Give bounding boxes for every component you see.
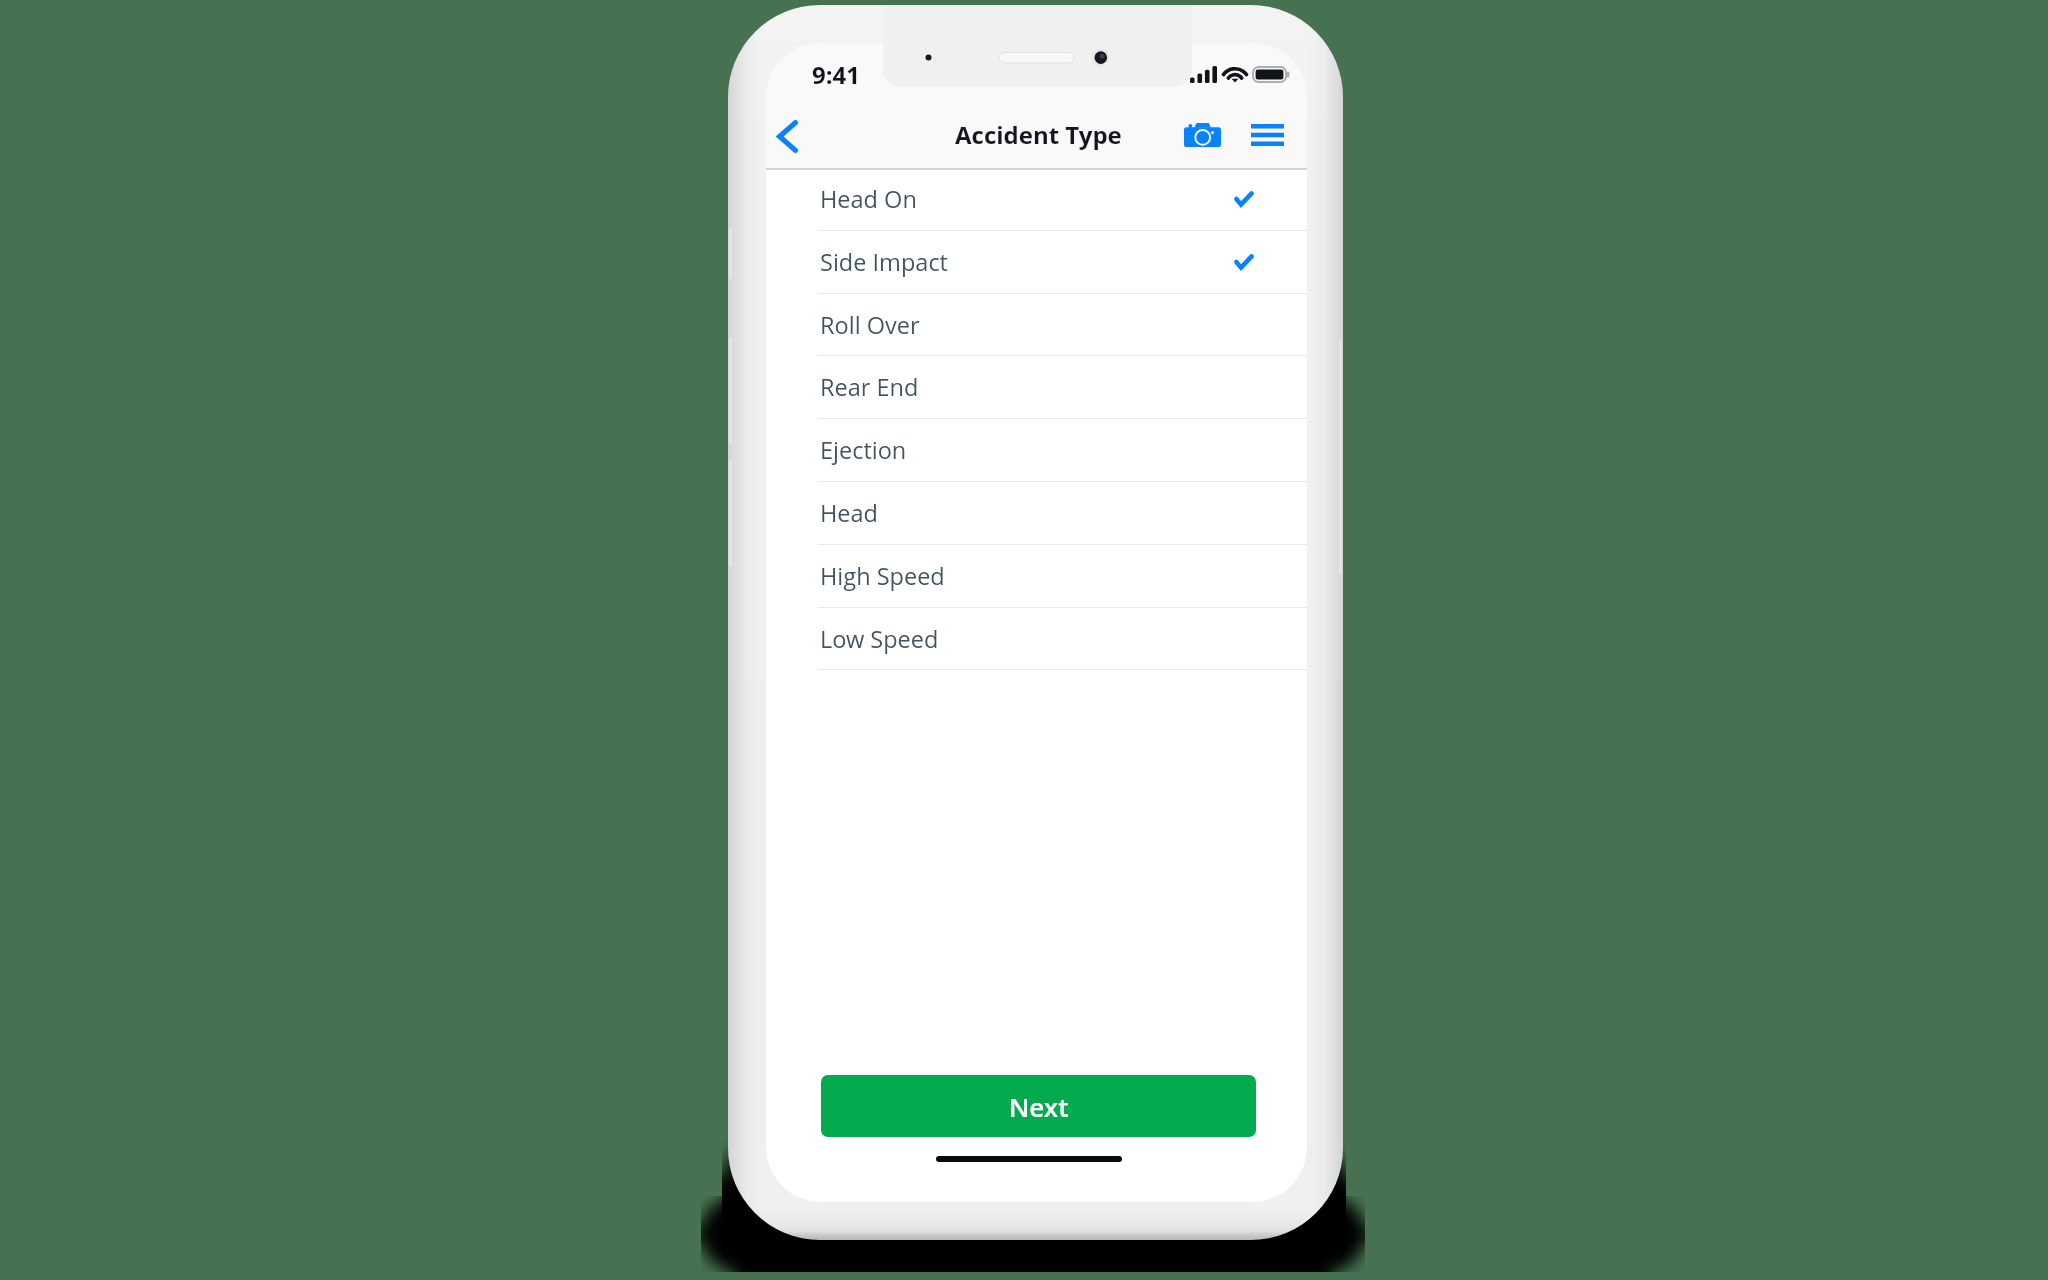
staticText: Accident Type: [955, 118, 1122, 151]
button[interactable]: Head: [766, 481, 1307, 544]
button[interactable]: Menu: [1241, 109, 1293, 161]
staticText: High Speed: [820, 560, 945, 592]
button[interactable]: Low Speed: [766, 607, 1307, 670]
button[interactable]: Side Impact: [766, 230, 1307, 293]
staticText: 9:41: [812, 58, 860, 91]
staticText: Roll Over: [820, 309, 920, 341]
button[interactable]: Head On: [766, 167, 1307, 230]
staticText: Head: [820, 497, 878, 529]
button[interactable]: Camera: [1176, 109, 1228, 161]
button[interactable]: Ejection: [766, 418, 1307, 481]
button[interactable]: Rear End: [766, 355, 1307, 418]
staticText: Head On: [820, 183, 917, 215]
button[interactable]: Next: [821, 1075, 1256, 1137]
staticText: Ejection: [820, 434, 907, 466]
button[interactable]: Back: [766, 107, 816, 165]
staticText: Low Speed: [820, 623, 939, 655]
button[interactable]: High Speed: [766, 544, 1307, 607]
button[interactable]: Roll Over: [766, 293, 1307, 356]
staticText: Side Impact: [820, 246, 948, 278]
staticText: Next: [1009, 1089, 1069, 1124]
staticText: Rear End: [820, 371, 919, 403]
